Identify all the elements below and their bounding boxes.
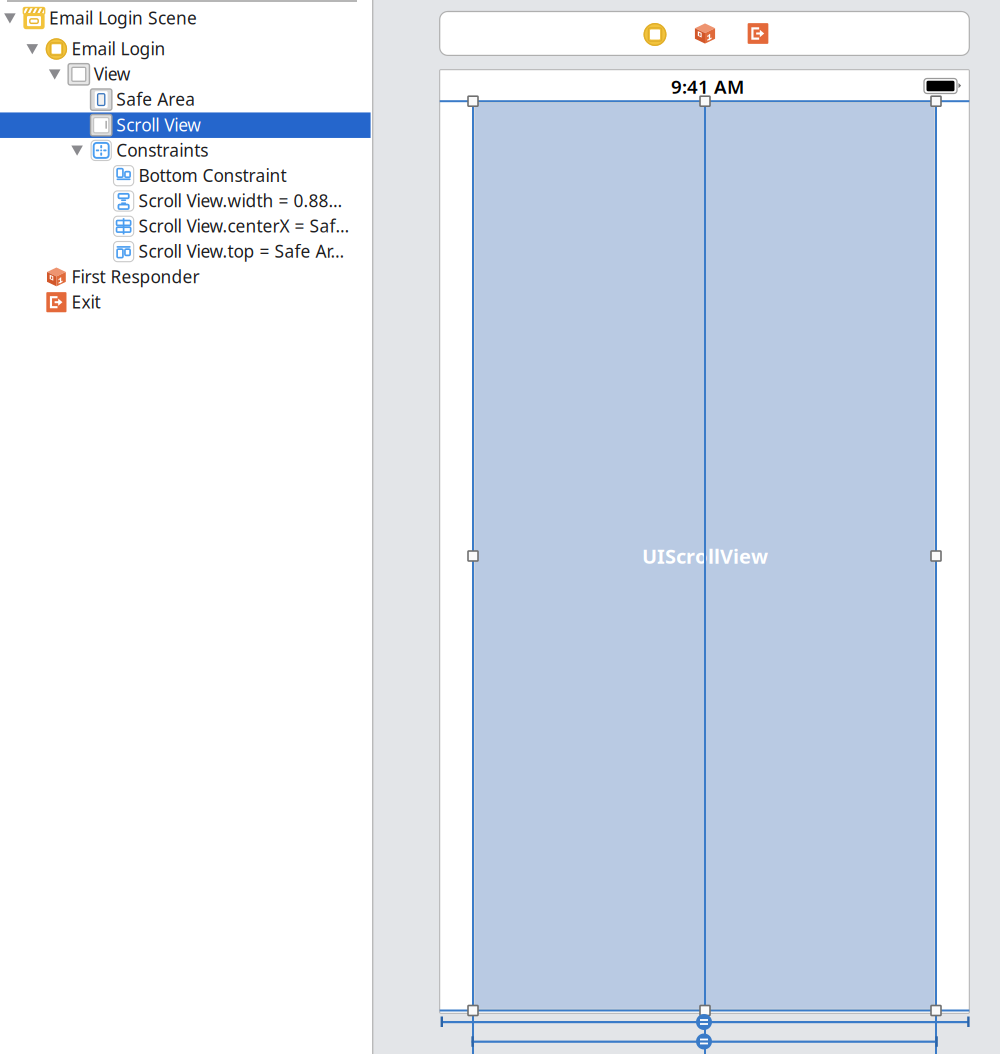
staticText: Scroll View <box>116 113 201 136</box>
staticText: Exit <box>71 290 100 313</box>
button[interactable]: Email Login Scene <box>0 0 1000 1054</box>
button[interactable]: Constraints <box>0 0 1000 1054</box>
button[interactable]: Exit <box>743 18 773 48</box>
button[interactable]: First responder <box>690 18 720 48</box>
staticText: Email Login Scene <box>49 6 197 29</box>
staticText: 9:41 AM <box>671 74 744 99</box>
staticText: UIScrollView <box>642 543 768 569</box>
staticText: Email Login <box>71 37 165 60</box>
button[interactable]: Safe Area <box>0 0 1000 1054</box>
staticText: Safe Area <box>116 88 195 111</box>
staticText: Constraints <box>116 138 208 161</box>
button[interactable]: First Responder <box>0 0 1000 1054</box>
staticText: First Responder <box>71 265 199 288</box>
button[interactable]: Bottom Constraint <box>0 0 1000 1054</box>
button[interactable]: Email Login <box>0 0 1000 1054</box>
button[interactable]: View controller <box>640 19 670 49</box>
staticText: Scroll View.top = Safe Ar… <box>139 240 345 263</box>
staticText: Bottom Constraint <box>139 164 287 187</box>
button[interactable]: Scroll View <box>0 0 1000 1054</box>
staticText: Scroll View.centerX = Saf… <box>139 214 350 237</box>
button[interactable]: Exit <box>0 0 1000 1054</box>
button[interactable]: Scroll View.centerX = Saf… <box>0 0 1000 1054</box>
staticText: Scroll View.width = 0.88… <box>139 189 343 212</box>
button[interactable]: Scroll View.top = Safe Ar… <box>0 0 1000 1054</box>
button[interactable]: Scroll View.width = 0.88… <box>0 0 1000 1054</box>
button[interactable]: View <box>0 0 1000 1054</box>
staticText: View <box>94 62 131 85</box>
